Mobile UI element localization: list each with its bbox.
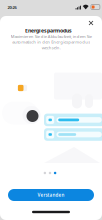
staticText: 20:26 — [7, 5, 16, 10]
staticText: Verstanden — [37, 192, 64, 198]
staticText: Energiesparmodus — [25, 27, 72, 34]
staticText: Maximieren Sie die Akkulaufzeit, indem S… — [10, 34, 91, 50]
button[interactable]: Schliessen — [85, 17, 96, 28]
button[interactable]: Verstanden — [8, 189, 94, 201]
